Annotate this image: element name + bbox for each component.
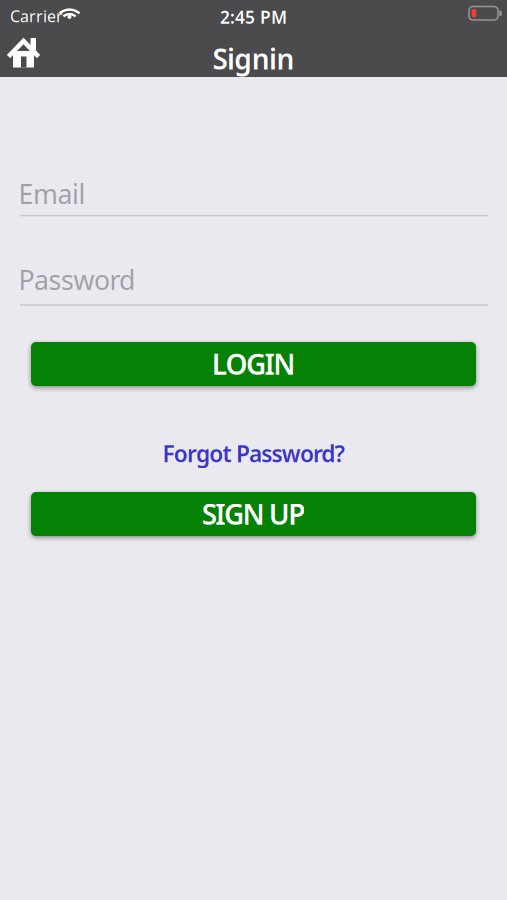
staticText: 2:45 PM — [220, 5, 287, 28]
button[interactable]: SIGN UP — [31, 492, 476, 536]
button[interactable]: Password — [0, 262, 507, 306]
staticText: Carrier — [10, 5, 63, 27]
staticText: Email — [18, 176, 85, 211]
staticText: Password — [18, 262, 135, 297]
button[interactable]: Email — [0, 176, 507, 216]
button[interactable] — [8, 36, 39, 68]
staticText: Signin — [212, 40, 294, 77]
staticText: LOGIN — [212, 345, 295, 383]
button[interactable]: LOGIN — [31, 342, 476, 386]
button[interactable]: Forgot Password? — [162, 438, 344, 469]
staticText: Forgot Password? — [162, 438, 344, 469]
staticText: SIGN UP — [202, 495, 305, 533]
